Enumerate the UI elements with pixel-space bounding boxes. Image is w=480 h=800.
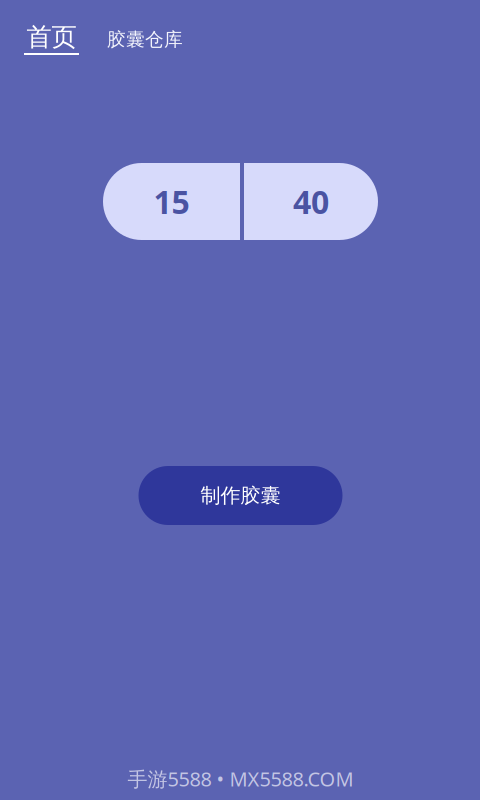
button[interactable]: 40 <box>244 163 378 240</box>
staticText: 15 <box>153 180 189 223</box>
staticText: 40 <box>293 180 329 223</box>
button[interactable]: 首页 <box>24 24 79 55</box>
button[interactable]: 15 <box>103 163 240 240</box>
button[interactable]: 制作胶囊 <box>138 466 342 525</box>
staticText: 首页 <box>26 21 76 52</box>
staticText: 胶囊仓库 <box>107 28 183 51</box>
button[interactable]: 胶囊仓库 <box>79 26 183 52</box>
staticText: 手游5588 • MX5588.COM <box>127 765 353 792</box>
staticText: 制作胶囊 <box>200 483 280 508</box>
